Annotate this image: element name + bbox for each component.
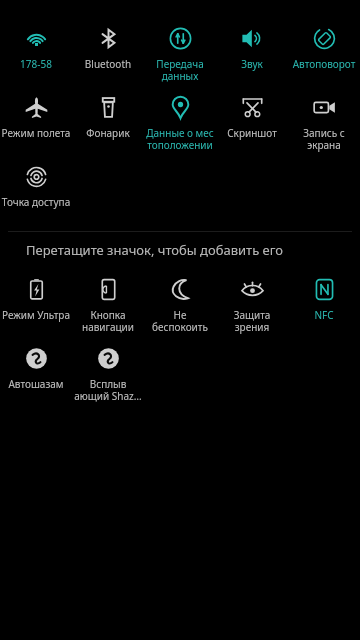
- button[interactable]: Автоповорот: [288, 22, 360, 71]
- button[interactable]: Точка доступа: [0, 160, 72, 209]
- staticText: Точка доступа: [1, 195, 71, 209]
- staticText: Данные о мес тоположении: [145, 126, 215, 152]
- button[interactable]: Автошазам: [0, 342, 72, 391]
- staticText: 178-58: [1, 57, 71, 71]
- button[interactable]: NFC: [288, 273, 360, 322]
- staticText: Перетащите значок, чтобы добавить его: [26, 241, 284, 259]
- staticText: Скриншот: [217, 126, 287, 140]
- staticText: Защита зрения: [217, 308, 287, 334]
- button[interactable]: Данные о местоположении: [144, 91, 216, 152]
- button[interactable]: Кнопка навигации: [72, 273, 144, 334]
- button[interactable]: Режим Ультра: [0, 273, 72, 322]
- staticText: Автошазам: [1, 377, 71, 391]
- button[interactable]: Скриншот: [216, 91, 288, 140]
- button[interactable]: Не беспокоить: [144, 273, 216, 334]
- staticText: Режим Ультра: [1, 308, 71, 322]
- button[interactable]: Wi-Fi: [0, 22, 72, 71]
- staticText: Bluetooth: [73, 57, 143, 71]
- button[interactable]: Режим полета: [0, 91, 72, 140]
- staticText: Передача данных: [145, 57, 215, 83]
- button[interactable]: Всплывающий Shazam: [72, 342, 144, 403]
- button[interactable]: Звук: [216, 22, 288, 71]
- staticText: Звук: [217, 57, 287, 71]
- staticText: Режим полета: [1, 126, 71, 140]
- staticText: Фонарик: [73, 126, 143, 140]
- button[interactable]: Bluetooth: [72, 22, 144, 71]
- staticText: Всплыв ающий Shaz…: [73, 377, 143, 403]
- staticText: Автоповорот: [289, 57, 359, 71]
- staticText: Запись с экрана: [289, 126, 359, 152]
- staticText: Кнопка навигации: [73, 308, 143, 334]
- staticText: NFC: [289, 308, 359, 322]
- button[interactable]: Фонарик: [72, 91, 144, 140]
- button[interactable]: Запись с экрана: [288, 91, 360, 152]
- button[interactable]: Передача данных: [144, 22, 216, 83]
- button[interactable]: Защита зрения: [216, 273, 288, 334]
- staticText: Не беспокоить: [145, 308, 215, 334]
